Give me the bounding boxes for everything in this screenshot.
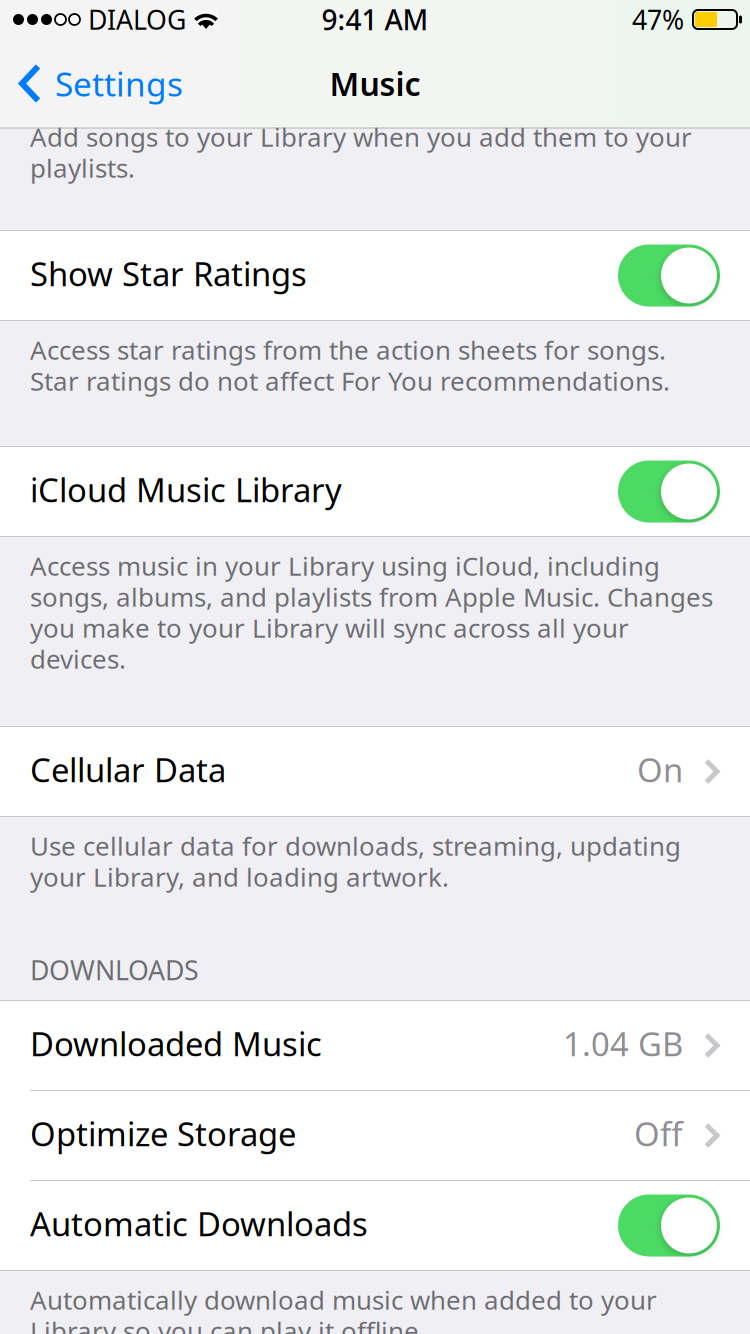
staticText: 1.04 GB (563, 1021, 683, 1066)
staticText: 9:41 AM (321, 1, 428, 38)
staticText: Add songs to your Library when you add t… (30, 119, 692, 154)
button[interactable]: Optimize Storage (0, 1091, 750, 1180)
staticText: On (637, 747, 683, 792)
staticText: Music (329, 62, 420, 105)
button[interactable]: Cellular Data (0, 727, 750, 816)
staticText: Automatically download music when added … (30, 1282, 657, 1317)
button[interactable]: Show Star Ratings (618, 244, 720, 306)
staticText: iCloud Music Library (30, 467, 342, 512)
staticText: Access star ratings from the action shee… (30, 332, 666, 367)
button[interactable]: Settings (0, 39, 195, 127)
staticText: Downloaded Music (30, 1021, 322, 1066)
staticText: Settings (55, 61, 183, 106)
staticText: Cellular Data (30, 747, 226, 792)
staticText: Library so you can play it offline. (30, 1313, 426, 1334)
staticText: playlists. (30, 150, 135, 185)
button[interactable]: Automatic Downloads (618, 1194, 720, 1256)
staticText: DOWNLOADS (30, 952, 199, 988)
staticText: Off (634, 1111, 683, 1156)
staticText: 47% (632, 2, 684, 37)
staticText: Optimize Storage (30, 1111, 296, 1156)
staticText: you make to your Library will sync acros… (30, 610, 629, 645)
staticText: songs, albums, and playlists from Apple … (30, 579, 713, 614)
staticText: Use cellular data for downloads, streami… (30, 828, 681, 863)
staticText: your Library, and loading artwork. (30, 859, 449, 894)
button[interactable]: Downloaded Music (0, 1001, 750, 1090)
staticText: Star ratings do not affect For You recom… (30, 363, 670, 398)
staticText: Show Star Ratings (30, 251, 307, 296)
staticText: DIALOG (88, 2, 186, 37)
staticText: Automatic Downloads (30, 1201, 368, 1246)
staticText: Access music in your Library using iClou… (30, 548, 660, 583)
button[interactable]: iCloud Music Library (618, 460, 720, 522)
staticText: devices. (30, 641, 126, 676)
